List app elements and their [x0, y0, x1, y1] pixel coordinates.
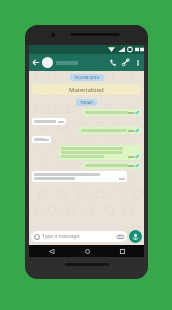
staticText: Type a message	[42, 233, 80, 240]
staticText: Materialized	[69, 86, 104, 94]
button[interactable]	[32, 171, 127, 182]
button[interactable]: Back	[38, 245, 64, 257]
button[interactable]	[32, 118, 66, 125]
button[interactable]: Back	[29, 56, 42, 69]
staticText: 18 JUNE 2016	[74, 75, 100, 80]
button[interactable]	[83, 109, 141, 116]
button[interactable]: Materialized	[32, 84, 141, 95]
button[interactable]: Attach	[119, 56, 132, 69]
button[interactable]: Record voice message	[129, 230, 142, 243]
button[interactable]: Home	[74, 245, 100, 257]
button[interactable]	[79, 127, 141, 134]
button[interactable]: Call	[106, 56, 119, 69]
button[interactable]: Recent apps	[109, 245, 135, 257]
button[interactable]	[83, 162, 141, 169]
button[interactable]	[42, 54, 106, 71]
button[interactable]	[32, 136, 51, 143]
button[interactable]: Type a message	[31, 231, 127, 242]
button[interactable]	[59, 145, 141, 160]
button[interactable]: More options	[132, 57, 143, 68]
staticText: TODAY	[80, 100, 93, 105]
